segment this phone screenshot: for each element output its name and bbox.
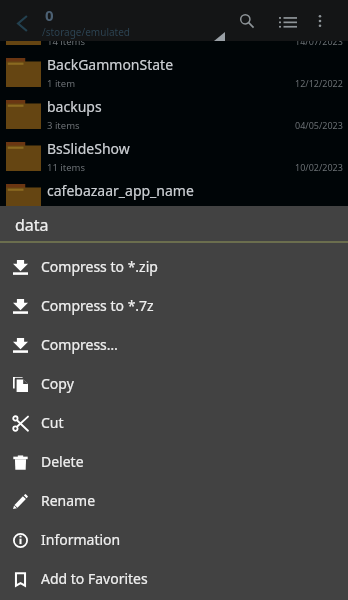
- button[interactable]: Add to Favorites: [0, 560, 348, 599]
- staticText: BackGammonState: [47, 55, 174, 74]
- staticText: Add to Favorites: [41, 569, 148, 588]
- staticText: data: [47, 13, 77, 32]
- staticText: Delete: [41, 452, 84, 471]
- staticText: backups: [47, 97, 102, 116]
- button[interactable]: data: [0, 9, 348, 51]
- staticText: 11 items: [47, 161, 86, 174]
- button[interactable]: BsSlideShow: [0, 135, 348, 177]
- staticText: Information: [41, 530, 121, 549]
- staticText: 1 item: [47, 77, 76, 90]
- staticText: Copy: [41, 374, 74, 393]
- staticText: 0: [45, 5, 54, 25]
- staticText: 3 items: [47, 119, 80, 132]
- staticText: Compress to *.zip: [41, 257, 158, 276]
- staticText: 08/11/2022: [295, 203, 343, 215]
- staticText: Cut: [41, 413, 64, 432]
- staticText: /storage/emulated: [42, 25, 130, 39]
- button[interactable]: backups: [0, 93, 348, 135]
- button[interactable]: Compress…: [0, 326, 348, 365]
- staticText: Compress…: [41, 335, 118, 354]
- staticText: BsSlideShow: [47, 139, 130, 158]
- button[interactable]: Compress to *.zip: [0, 248, 348, 287]
- button[interactable]: Search: [227, 1, 267, 41]
- staticText: Rename: [41, 491, 96, 510]
- button[interactable]: Cut: [0, 404, 348, 443]
- staticText: data: [15, 214, 49, 236]
- button[interactable]: Back: [2, 3, 42, 43]
- staticText: cafebazaar_app_name: [47, 181, 194, 200]
- button[interactable]: View mode: [268, 1, 308, 41]
- staticText: 14/07/2023: [295, 35, 343, 47]
- staticText: Compress to *.7z: [41, 296, 154, 315]
- button[interactable]: More options: [300, 1, 340, 41]
- staticText: 6 items: [47, 203, 80, 216]
- staticText: 04/05/2023: [295, 119, 343, 131]
- staticText: 14 items: [47, 35, 86, 48]
- staticText: 10/02/2023: [295, 161, 343, 173]
- staticText: 12/12/2022: [295, 77, 343, 89]
- button[interactable]: Compress to *.7z: [0, 287, 348, 326]
- button[interactable]: Delete: [0, 443, 348, 482]
- button[interactable]: cafebazaar_app_name: [0, 177, 348, 219]
- button[interactable]: BackGammonState: [0, 51, 348, 93]
- button[interactable]: Copy: [0, 365, 348, 404]
- button[interactable]: Rename: [0, 482, 348, 521]
- button[interactable]: Information: [0, 521, 348, 560]
